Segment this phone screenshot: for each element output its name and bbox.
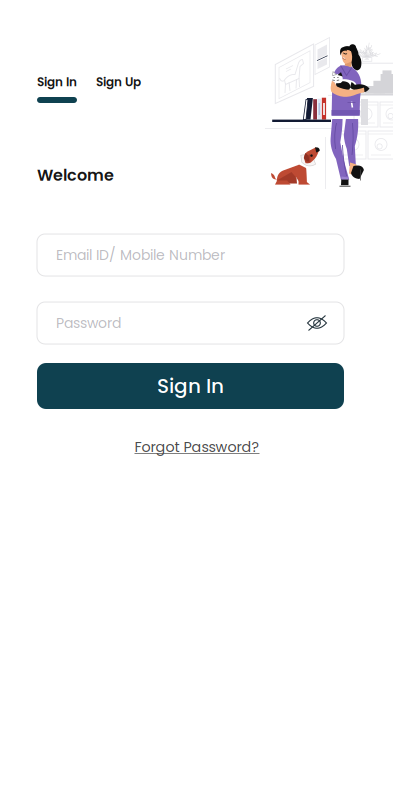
staticText: Email ID/ Mobile Number (56, 245, 225, 265)
button[interactable]: Sign Up (96, 75, 141, 89)
staticText: Welcome (37, 164, 114, 186)
staticText: Sign Up (96, 74, 141, 90)
staticText: Forgot Password? (134, 437, 259, 457)
staticText: Sign In (37, 74, 77, 90)
button[interactable]: Sign In (37, 363, 344, 409)
button[interactable]: Forgot Password? (127, 438, 267, 456)
staticText: Password (56, 313, 121, 333)
button[interactable]: Sign In (37, 75, 77, 103)
staticText: Sign In (157, 372, 224, 400)
